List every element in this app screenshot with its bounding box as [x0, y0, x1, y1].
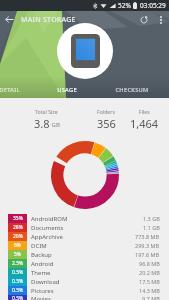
button[interactable]: More options: [153, 11, 169, 28]
staticText: Pictures: [31, 287, 54, 295]
staticText: USAGE: [57, 86, 77, 94]
button[interactable]: 0.5%: [0, 295, 169, 300]
staticText: 35%: [13, 215, 23, 222]
button[interactable]: Refresh: [135, 11, 153, 28]
staticText: 773.8 MB: [135, 233, 160, 240]
button[interactable]: 5%: [0, 250, 169, 259]
staticText: DETAIL: [0, 86, 20, 94]
staticText: GB: [50, 121, 60, 129]
staticText: 03:05:29: [140, 1, 166, 10]
button[interactable]: 20%: [0, 232, 169, 241]
staticText: Total Size: [35, 108, 58, 115]
staticText: Movies: [31, 295, 51, 300]
staticText: 28%: [13, 224, 23, 231]
staticText: Folders: [97, 108, 115, 115]
staticText: DCIM: [31, 242, 47, 250]
button[interactable]: CHECKSUM: [105, 82, 158, 98]
staticText: 96.8 MB: [139, 260, 160, 267]
button[interactable]: USAGE: [29, 82, 105, 98]
staticText: Backup: [31, 251, 52, 259]
staticText: 1,464: [130, 116, 159, 131]
button[interactable]: Files: [119, 103, 169, 135]
staticText: Files: [139, 108, 150, 115]
button[interactable]: 0.5%: [0, 286, 169, 295]
button[interactable]: 28%: [0, 223, 169, 232]
staticText: 299.3 MB: [135, 242, 160, 249]
staticText: MAIN STORAGE: [21, 15, 76, 25]
staticText: AndroidROM: [31, 215, 68, 223]
staticText: 52%: [118, 1, 131, 10]
staticText: 20%: [13, 233, 23, 240]
staticText: CHECKSUM: [115, 86, 149, 94]
staticText: 0.5%: [12, 295, 24, 300]
staticText: 0.5%: [12, 287, 24, 294]
staticText: 9.7 MB: [142, 295, 160, 300]
staticText: 20.2 MB: [139, 269, 160, 276]
staticText: Documents: [31, 224, 64, 232]
staticText: 5%: [14, 251, 22, 258]
staticText: Download: [31, 278, 60, 286]
button[interactable]: 2.5%: [0, 259, 169, 268]
staticText: 1.3 GB: [143, 215, 160, 222]
staticText: 17.5 MB: [139, 278, 160, 285]
button[interactable]: 6%: [0, 241, 169, 250]
staticText: 2.5%: [12, 260, 24, 267]
staticText: Android: [31, 260, 54, 268]
button[interactable]: Back: [0, 11, 19, 28]
staticText: 3.8: [34, 116, 50, 131]
button[interactable]: 0.5%: [0, 277, 169, 286]
button[interactable]: Folders: [93, 103, 119, 135]
staticText: AppArchive: [31, 233, 63, 241]
staticText: Theme: [31, 269, 51, 277]
staticText: 0.5%: [12, 278, 24, 285]
staticText: 6%: [14, 242, 22, 249]
button[interactable]: 35%: [0, 214, 169, 223]
staticText: 197.6 MB: [135, 251, 160, 258]
staticText: 0.5%: [12, 269, 24, 276]
staticText: 14.3 MB: [139, 287, 160, 294]
staticText: 1.1 GB: [143, 224, 160, 231]
button[interactable]: Total Size: [0, 103, 93, 135]
staticText: 356: [97, 116, 116, 131]
button[interactable]: 0.5%: [0, 268, 169, 277]
button[interactable]: DETAIL: [0, 82, 29, 98]
